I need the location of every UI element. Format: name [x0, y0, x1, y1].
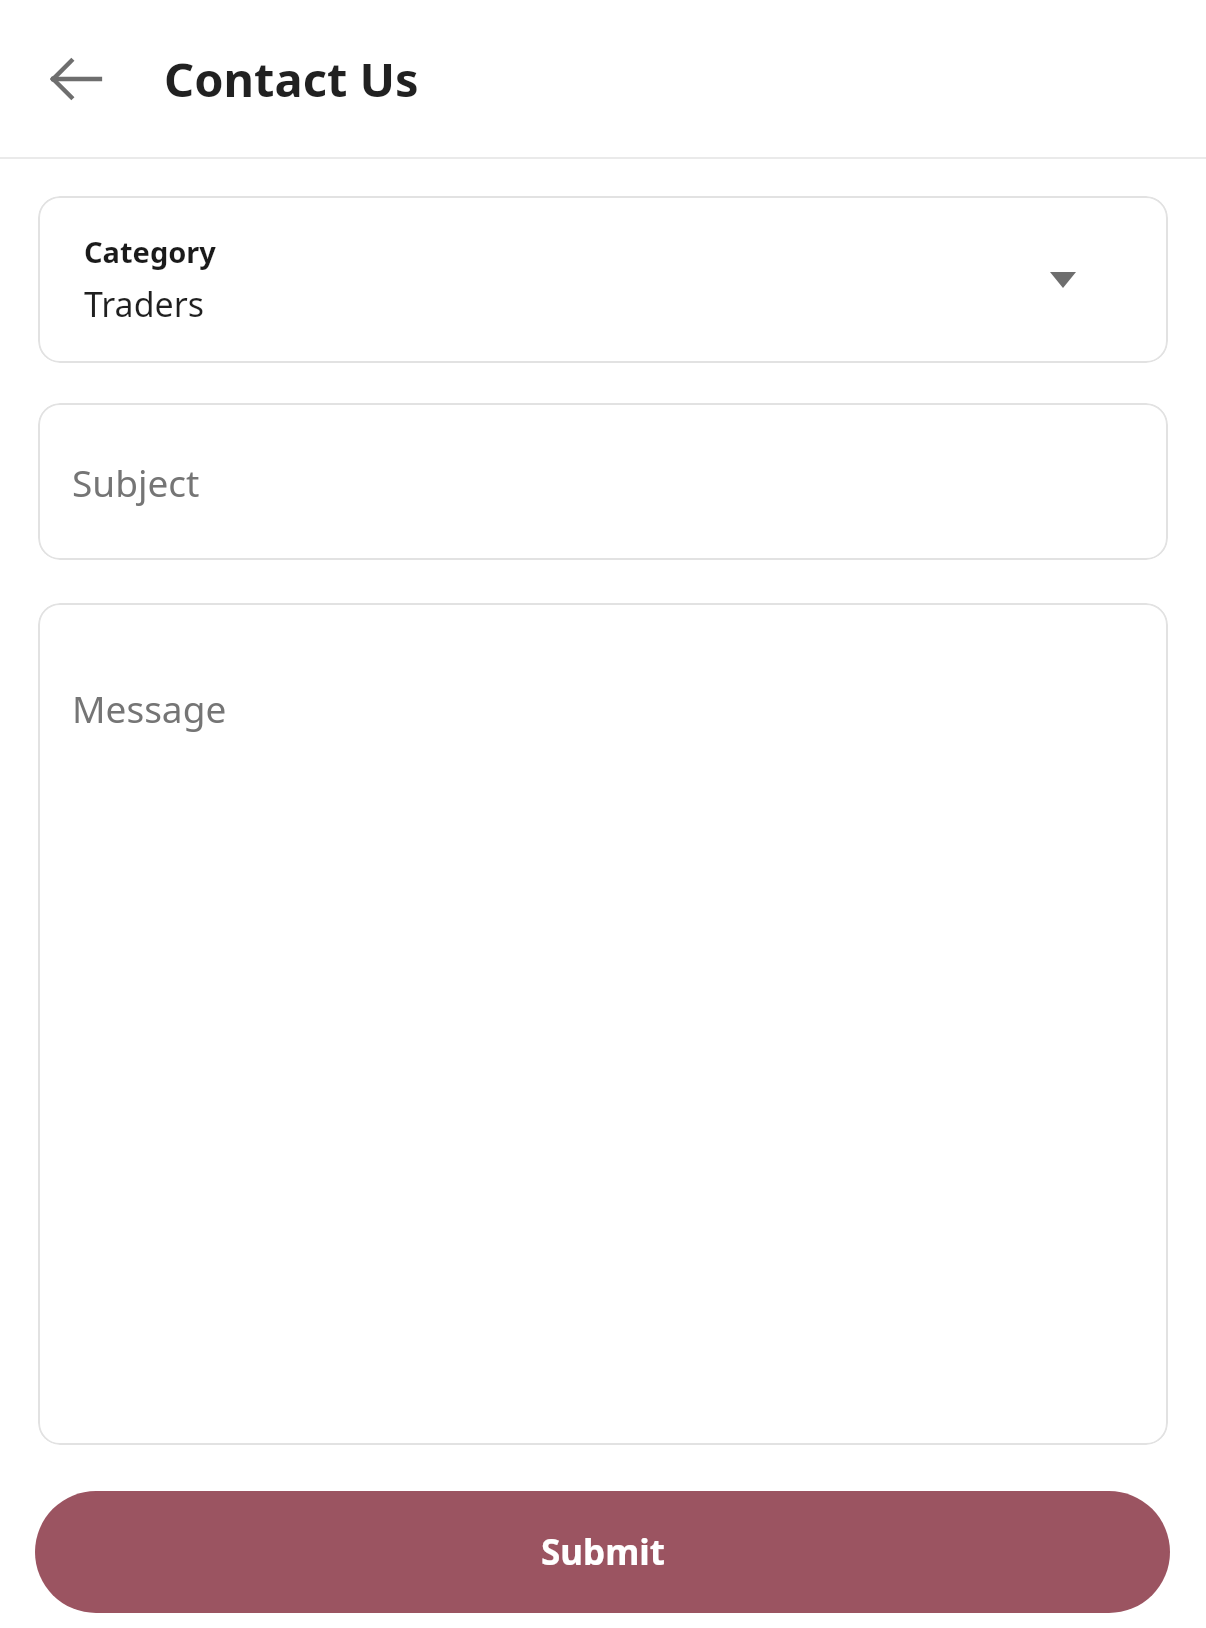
- staticText: Message: [72, 683, 227, 733]
- staticText: Subject: [72, 457, 200, 507]
- staticText: Traders: [84, 281, 205, 327]
- button[interactable]: Back: [42, 45, 110, 113]
- button[interactable]: Message: [38, 603, 1168, 1445]
- staticText: Category: [84, 232, 216, 271]
- staticText: Submit: [541, 1528, 665, 1576]
- button[interactable]: Submit: [35, 1491, 1170, 1613]
- button[interactable]: Category: [38, 196, 1168, 363]
- staticText: Contact Us: [164, 47, 419, 111]
- button[interactable]: Subject: [38, 403, 1168, 560]
